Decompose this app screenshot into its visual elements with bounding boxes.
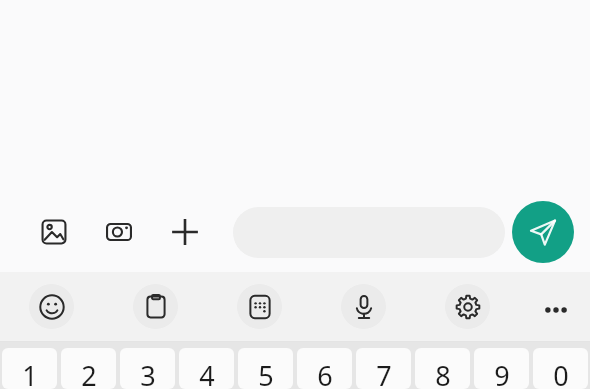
staticText: 6 bbox=[317, 357, 333, 389]
staticText: 4 bbox=[199, 357, 215, 389]
staticText: 5 bbox=[258, 357, 274, 389]
staticText: 8 bbox=[435, 357, 451, 389]
button[interactable]: Voice input bbox=[341, 284, 386, 329]
button[interactable]: 2 bbox=[61, 348, 116, 389]
button[interactable]: 4 bbox=[179, 348, 234, 389]
staticText: 9 bbox=[494, 357, 510, 389]
button[interactable]: 1 bbox=[2, 348, 57, 389]
button[interactable]: 0 bbox=[533, 348, 588, 389]
staticText: 0 bbox=[553, 357, 569, 389]
staticText: 7 bbox=[376, 357, 392, 389]
button[interactable]: Settings bbox=[445, 284, 490, 329]
button[interactable]: More options bbox=[163, 210, 207, 254]
staticText: 1 bbox=[22, 357, 38, 389]
button[interactable]: More bbox=[533, 287, 578, 332]
staticText: 2 bbox=[81, 357, 97, 389]
staticText: 3 bbox=[140, 357, 156, 389]
button[interactable]: 6 bbox=[297, 348, 352, 389]
button[interactable]: Stickers bbox=[237, 284, 282, 329]
button[interactable]: Clipboard bbox=[133, 284, 178, 329]
button[interactable]: 3 bbox=[120, 348, 175, 389]
button[interactable]: 7 bbox=[356, 348, 411, 389]
button[interactable]: Emoji bbox=[29, 284, 74, 329]
button[interactable]: 5 bbox=[238, 348, 293, 389]
button[interactable]: Attach image bbox=[32, 210, 76, 254]
button[interactable]: 8 bbox=[415, 348, 470, 389]
button[interactable]: 9 bbox=[474, 348, 529, 389]
button[interactable]: Camera bbox=[97, 210, 141, 254]
button[interactable]: Send bbox=[512, 201, 574, 263]
